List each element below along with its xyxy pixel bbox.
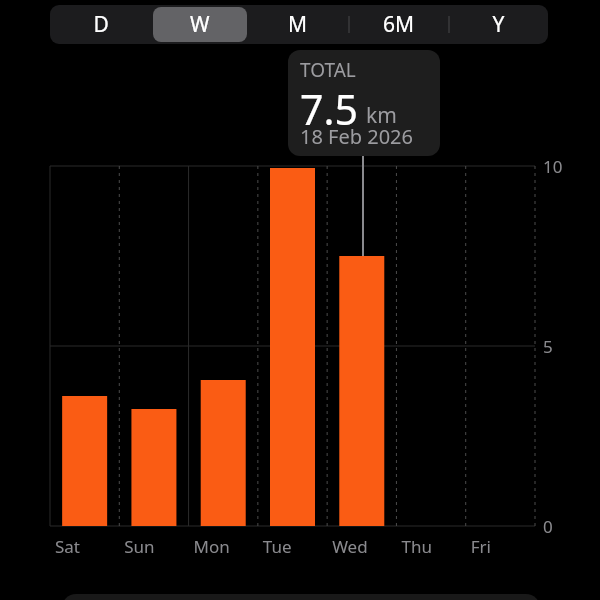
button[interactable]: M range — [247, 5, 349, 44]
button[interactable]: Details — [62, 594, 540, 600]
button[interactable]: W range — [153, 5, 247, 44]
button[interactable]: Total 7.5 km, 18 Feb 2026 — [288, 50, 440, 156]
button[interactable]: 6M range — [349, 5, 449, 44]
button[interactable]: Y range — [449, 5, 548, 44]
button[interactable]: D range — [50, 5, 153, 44]
